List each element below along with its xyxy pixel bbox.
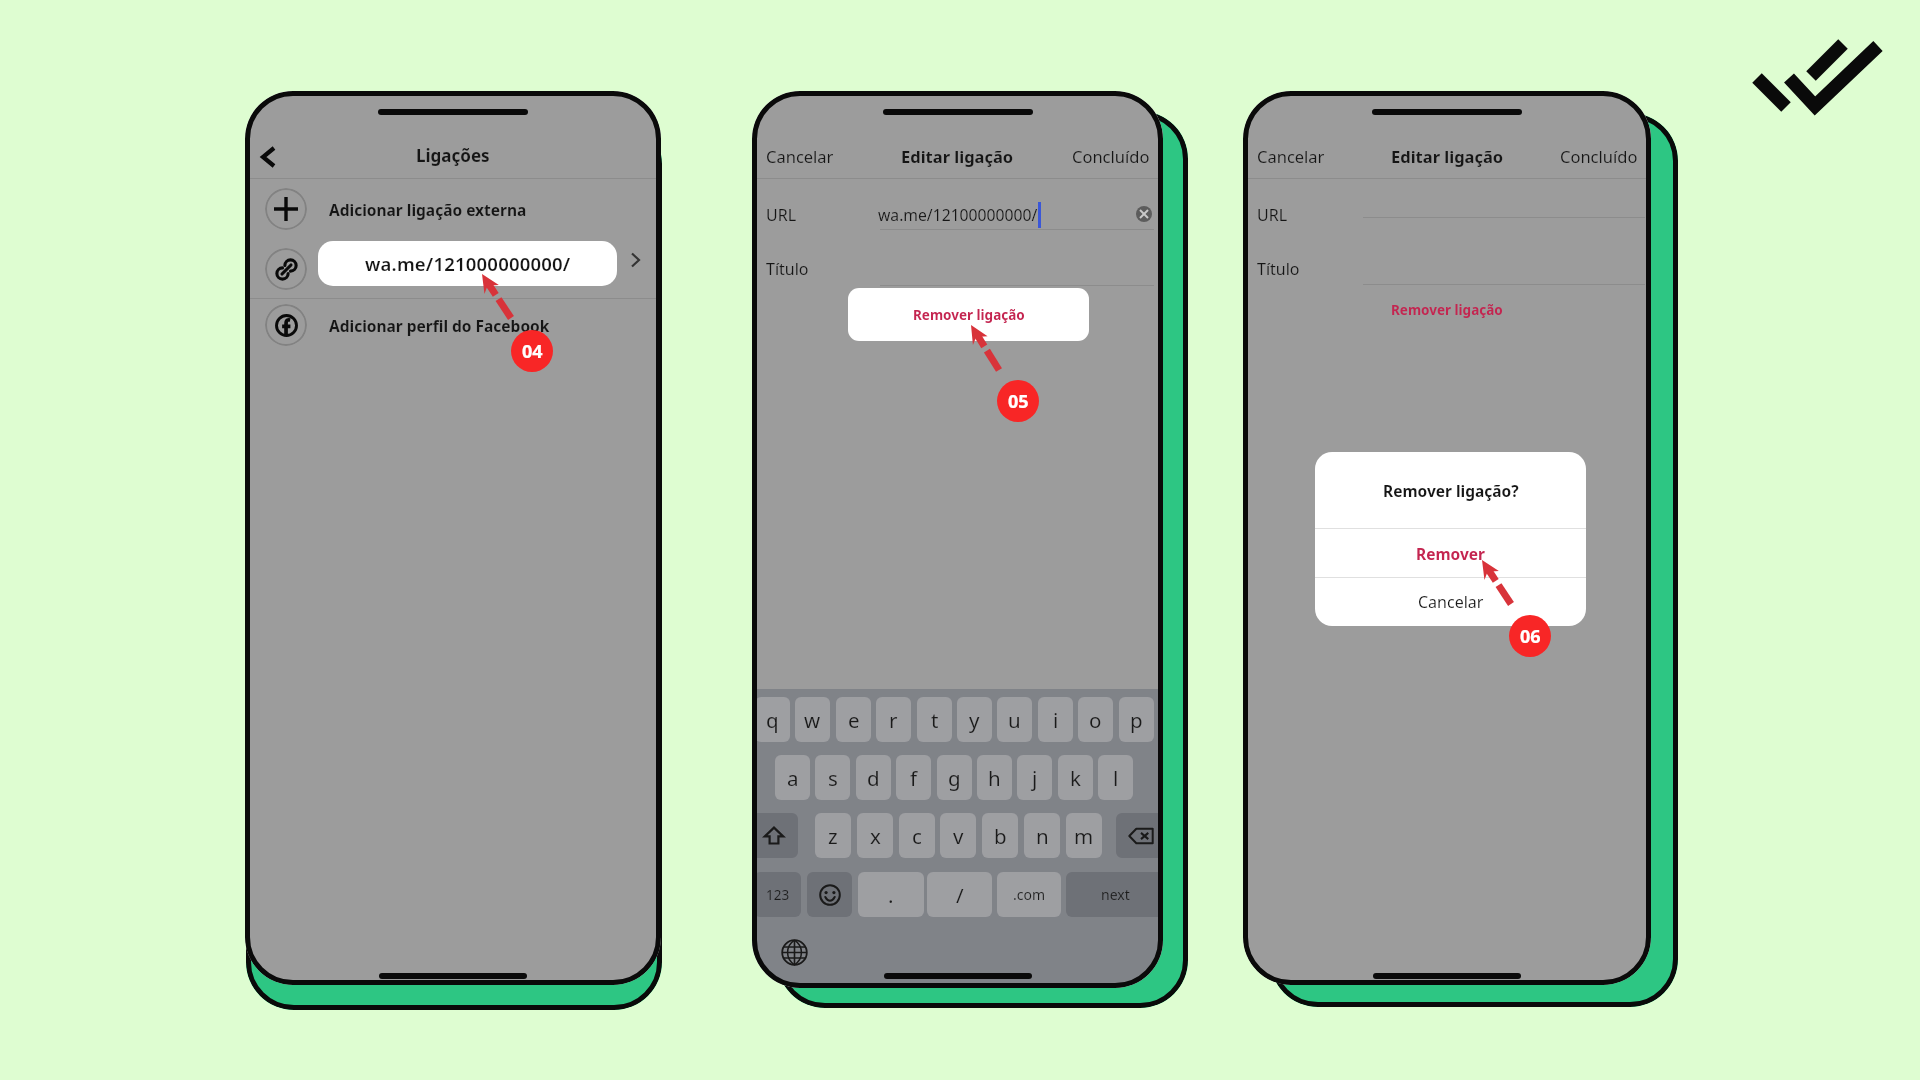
button[interactable]: Remover ligação [848, 288, 1089, 341]
button[interactable]: o [1078, 697, 1113, 742]
button[interactable]: wa.me/121000000000/ [318, 241, 617, 286]
staticText: f [910, 764, 918, 792]
button[interactable]: Cancelar [766, 145, 834, 167]
staticText: 123 [766, 886, 790, 904]
button[interactable]: w [795, 697, 830, 742]
button[interactable]: f [896, 755, 931, 800]
button[interactable]: .com [997, 872, 1061, 917]
button[interactable]: Next [1066, 872, 1163, 917]
staticText: q [766, 706, 779, 734]
button[interactable]: l [1098, 755, 1133, 800]
staticText: wa.me/121000000000/ [365, 251, 571, 276]
staticText: . [888, 881, 894, 909]
staticText: URL [766, 204, 797, 226]
staticText: y [969, 706, 980, 734]
button[interactable]: Adicionar perfil do Facebook [245, 296, 661, 354]
staticText: a [787, 764, 799, 792]
button[interactable]: c [899, 813, 935, 858]
button[interactable]: Change language [781, 939, 808, 966]
staticText: 04 [522, 339, 543, 364]
button[interactable]: Backspace [1116, 813, 1163, 858]
staticText: / [956, 881, 964, 909]
button[interactable]: k [1058, 755, 1093, 800]
staticText: w [804, 706, 821, 734]
button[interactable]: z [815, 813, 851, 858]
button[interactable]: d [856, 755, 891, 800]
button[interactable]: / [927, 872, 992, 917]
button[interactable]: i [1038, 697, 1073, 742]
button[interactable]: Cancelar [1315, 578, 1586, 626]
button[interactable]: a [775, 755, 810, 800]
button[interactable]: h [977, 755, 1012, 800]
button[interactable]: j [1017, 755, 1052, 800]
staticText: Remover ligação? [1383, 480, 1519, 501]
button[interactable]: Concluído [1072, 145, 1150, 167]
staticText: Remover ligação [913, 306, 1025, 324]
button[interactable]: s [815, 755, 850, 800]
button[interactable]: Shift [752, 813, 798, 858]
staticText: i [1053, 706, 1059, 734]
staticText: g [948, 764, 961, 792]
button[interactable]: Emoji [807, 872, 852, 917]
staticText: Ligações [416, 144, 490, 167]
staticText: Adicionar perfil do Facebook [329, 315, 550, 336]
button[interactable]: q [755, 697, 790, 742]
staticText: b [994, 822, 1007, 850]
staticText: s [828, 764, 838, 792]
staticText: URL [1257, 204, 1288, 226]
staticText: u [1008, 706, 1021, 734]
staticText: v [953, 822, 964, 850]
staticText: Título [1257, 258, 1300, 280]
staticText: Cancelar [1418, 591, 1484, 613]
button[interactable]: b [982, 813, 1018, 858]
staticText: e [848, 706, 860, 734]
button[interactable]: g [937, 755, 972, 800]
button[interactable]: . [858, 872, 924, 917]
staticText: k [1070, 764, 1081, 792]
button[interactable]: m [1066, 813, 1102, 858]
staticText: z [828, 822, 838, 850]
staticText: x [870, 822, 881, 850]
staticText: Editar ligação [901, 145, 1014, 167]
staticText: r [889, 706, 898, 734]
button[interactable]: x [857, 813, 893, 858]
staticText: m [1074, 822, 1094, 850]
staticText: Editar ligação [1391, 145, 1504, 167]
staticText: wa.me/12100000000/ [878, 204, 1038, 225]
staticText: Título [766, 258, 809, 280]
staticText: d [867, 764, 880, 792]
button[interactable]: Remover ligação [1391, 301, 1503, 319]
button[interactable]: t [917, 697, 952, 742]
staticText: c [912, 822, 922, 850]
button[interactable]: y [957, 697, 992, 742]
button[interactable]: v [940, 813, 976, 858]
button[interactable]: Adicionar ligação externa [245, 180, 661, 238]
button[interactable]: Numbers [754, 872, 801, 917]
staticText: 06 [1520, 624, 1541, 649]
button[interactable]: Back [249, 141, 283, 175]
staticText: l [1113, 764, 1119, 792]
staticText: 05 [1008, 389, 1029, 414]
staticText: h [988, 764, 1001, 792]
staticText: .com [1013, 885, 1046, 904]
button[interactable]: Open link [627, 252, 647, 272]
staticText: Remover [1416, 543, 1485, 564]
button[interactable]: r [876, 697, 911, 742]
staticText: Adicionar ligação externa [329, 199, 527, 220]
button[interactable]: u [997, 697, 1032, 742]
button[interactable]: p [1119, 697, 1154, 742]
staticText: n [1036, 822, 1049, 850]
staticText: p [1130, 706, 1143, 734]
button[interactable]: e [836, 697, 871, 742]
button[interactable]: Cancelar [1257, 145, 1325, 167]
staticText: j [1032, 764, 1038, 792]
staticText: o [1089, 706, 1102, 734]
button[interactable] [245, 239, 661, 297]
button[interactable]: Clear [1136, 206, 1152, 222]
button[interactable]: n [1024, 813, 1060, 858]
button[interactable]: Concluído [1560, 145, 1638, 167]
button[interactable]: Remover [1315, 529, 1586, 577]
staticText: next [1101, 885, 1130, 904]
staticText: t [931, 706, 939, 734]
